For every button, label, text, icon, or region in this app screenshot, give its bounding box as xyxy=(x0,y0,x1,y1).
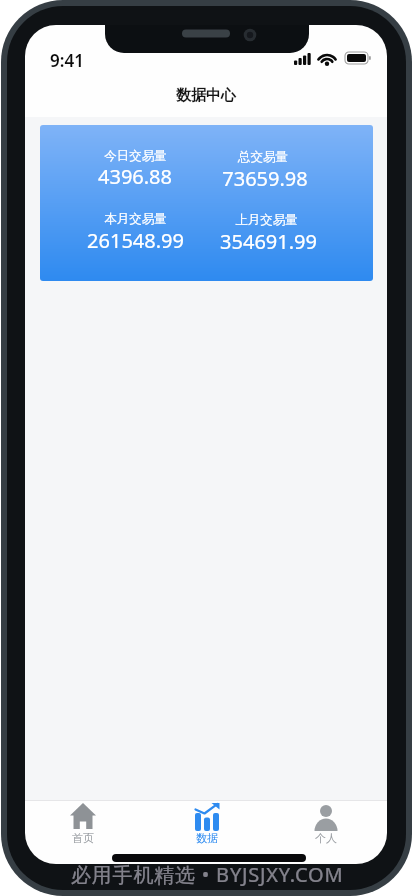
staticText: 261548.99 xyxy=(87,227,184,254)
staticText: 个人 xyxy=(315,831,337,845)
staticText: 上月交易量 xyxy=(235,212,298,228)
button[interactable]: 首页 xyxy=(43,801,123,847)
staticText: 9:41 xyxy=(50,49,84,71)
staticText: 必用手机精选 • BYJSJXY.COM xyxy=(71,861,344,887)
staticText: 4396.88 xyxy=(98,163,172,190)
staticText: 数据 xyxy=(196,831,218,845)
staticText: 354691.99 xyxy=(220,228,317,255)
staticText: 总交易量 xyxy=(238,149,288,165)
button[interactable]: 个人 xyxy=(286,801,366,847)
staticText: 数据中心 xyxy=(176,86,236,105)
staticText: 73659.98 xyxy=(222,165,308,192)
button[interactable]: 今日交易量 xyxy=(40,125,373,281)
staticText: 今日交易量 xyxy=(104,148,167,164)
staticText: 本月交易量 xyxy=(104,211,167,227)
staticText: 首页 xyxy=(72,831,94,845)
button[interactable]: 数据 xyxy=(167,801,247,847)
